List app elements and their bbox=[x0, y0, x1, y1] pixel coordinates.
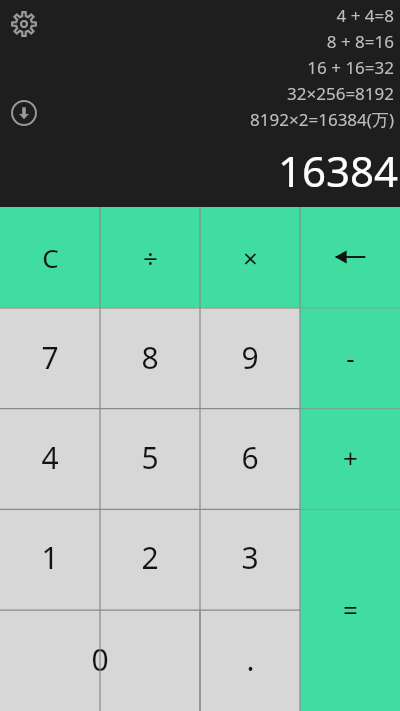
staticText: 6 bbox=[241, 437, 259, 478]
button[interactable]: 3 bbox=[200, 507, 300, 607]
staticText: 4 + 4=8 bbox=[336, 4, 394, 27]
staticText: . bbox=[246, 639, 255, 680]
staticText: × bbox=[243, 240, 258, 275]
staticText: 1 bbox=[41, 537, 59, 578]
button[interactable]: 1 bbox=[0, 507, 100, 607]
button[interactable]: 4 bbox=[0, 407, 100, 507]
staticText: 0 bbox=[91, 639, 109, 680]
button[interactable]: - bbox=[300, 307, 400, 407]
button[interactable]: ÷ bbox=[100, 207, 200, 307]
button[interactable]: C bbox=[0, 207, 100, 307]
button[interactable]: × bbox=[200, 207, 300, 307]
staticText: 2 bbox=[141, 537, 159, 578]
staticText: 9 bbox=[241, 337, 259, 378]
staticText: ÷ bbox=[143, 240, 158, 275]
button[interactable]: Backspace bbox=[300, 207, 400, 307]
staticText: 16 + 16=32 bbox=[307, 56, 394, 79]
staticText: 4 bbox=[41, 437, 59, 478]
button[interactable]: Settings bbox=[8, 8, 40, 40]
staticText: 8192×2=16384(万) bbox=[250, 108, 394, 131]
button[interactable]: . bbox=[200, 607, 300, 711]
staticText: C bbox=[42, 240, 59, 275]
button[interactable]: + bbox=[300, 407, 400, 507]
button[interactable]: 2 bbox=[100, 507, 200, 607]
staticText: 8 + 8=16 bbox=[326, 30, 394, 53]
button[interactable]: 7 bbox=[0, 307, 100, 407]
staticText: 8 bbox=[141, 337, 159, 378]
button[interactable]: 0 bbox=[0, 607, 200, 711]
staticText: 16384 bbox=[277, 142, 398, 199]
button[interactable]: = bbox=[300, 507, 400, 711]
staticText: 7 bbox=[41, 337, 59, 378]
button[interactable]: 5 bbox=[100, 407, 200, 507]
button[interactable]: 8 bbox=[100, 307, 200, 407]
staticText: + bbox=[343, 440, 358, 475]
staticText: 32×256=8192 bbox=[287, 82, 394, 105]
button[interactable]: 9 bbox=[200, 307, 300, 407]
button[interactable]: Download history bbox=[8, 97, 40, 129]
staticText: 5 bbox=[141, 437, 159, 478]
staticText: = bbox=[343, 592, 358, 627]
staticText: 3 bbox=[241, 537, 259, 578]
staticText: - bbox=[346, 340, 355, 375]
button[interactable]: 6 bbox=[200, 407, 300, 507]
